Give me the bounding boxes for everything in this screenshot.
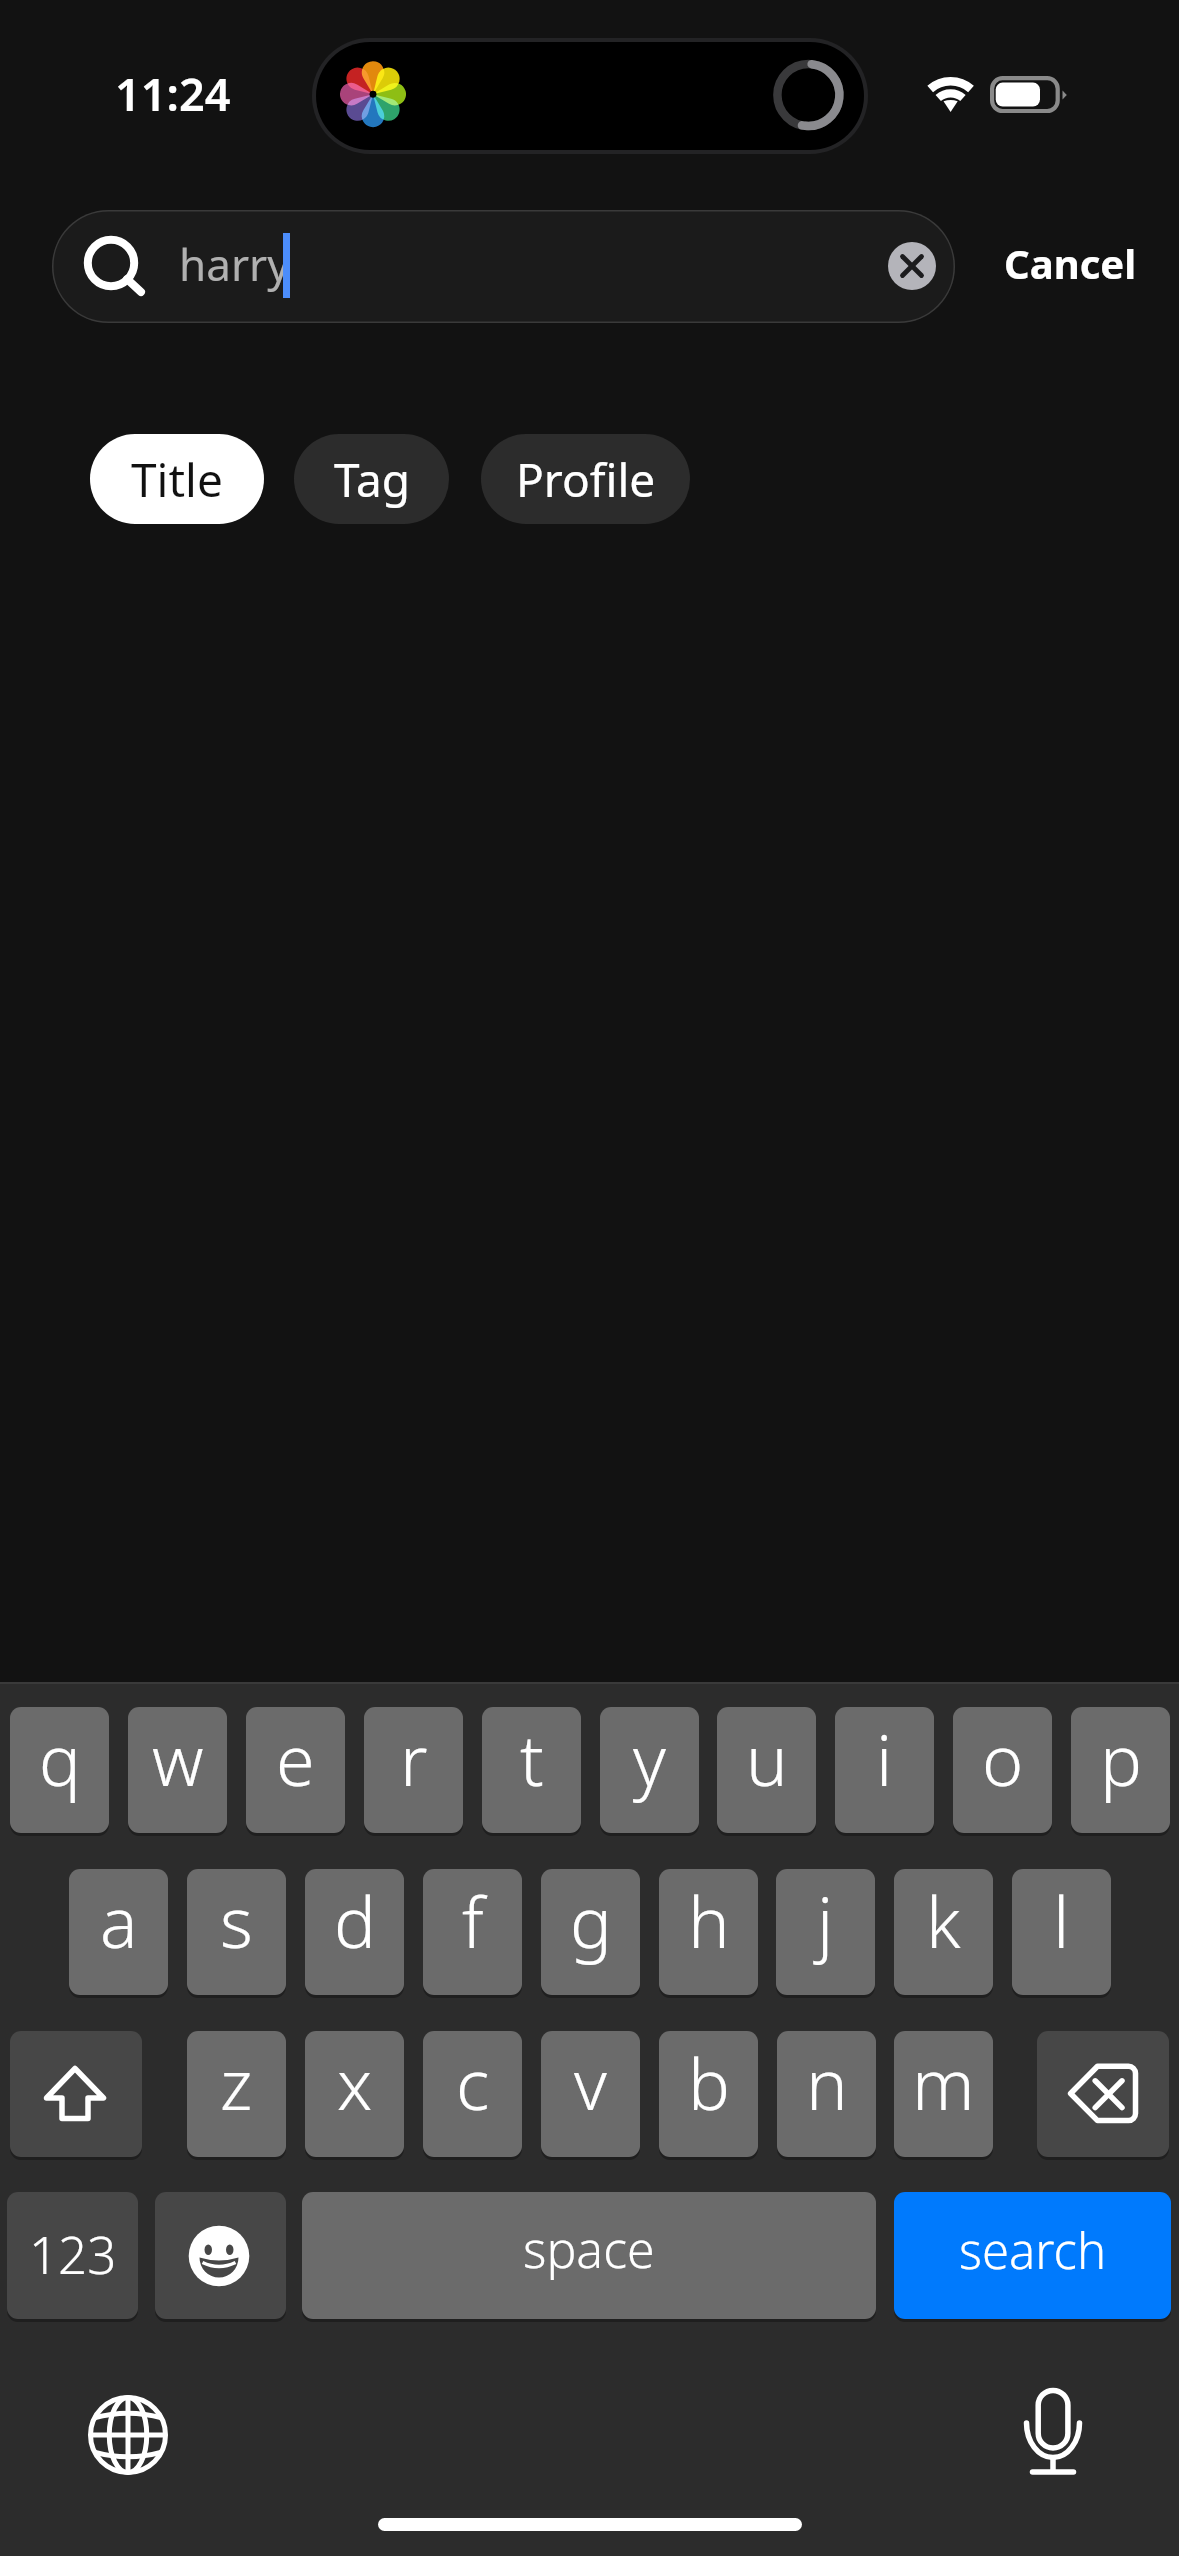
staticText: f	[462, 1873, 484, 1968]
staticText: Cancel	[1004, 236, 1137, 290]
button[interactable]: w	[128, 1707, 227, 1833]
button[interactable]: a	[69, 1869, 168, 1995]
staticText: e	[276, 1711, 315, 1806]
button[interactable]: Clear text	[888, 242, 936, 290]
staticText: h	[688, 1873, 730, 1968]
button[interactable]: l	[1012, 1869, 1111, 1995]
button[interactable]: c	[423, 2031, 522, 2157]
staticText: Tag	[334, 448, 410, 511]
button[interactable]: g	[541, 1869, 640, 1995]
staticText: r	[400, 1711, 428, 1806]
button[interactable]: m	[894, 2031, 993, 2157]
button[interactable]: Tag	[294, 434, 449, 524]
staticText: t	[520, 1711, 544, 1806]
staticText: w	[152, 1711, 204, 1806]
button[interactable]: r	[364, 1707, 463, 1833]
staticText: o	[982, 1711, 1024, 1806]
button[interactable]: f	[423, 1869, 522, 1995]
staticText: x	[337, 2035, 373, 2130]
staticText: n	[806, 2035, 848, 2130]
button[interactable]: z	[187, 2031, 286, 2157]
button[interactable]: Title	[90, 434, 264, 524]
button[interactable]: d	[305, 1869, 404, 1995]
button[interactable]: b	[659, 2031, 758, 2157]
button[interactable]: q	[10, 1707, 109, 1833]
staticText: p	[1100, 1711, 1142, 1806]
button[interactable]: t	[482, 1707, 581, 1833]
staticText: Profile	[516, 448, 656, 511]
staticText: 123	[29, 2219, 117, 2288]
button[interactable]: n	[777, 2031, 876, 2157]
staticText: u	[746, 1711, 788, 1806]
button[interactable]: u	[717, 1707, 816, 1833]
button[interactable]: p	[1071, 1707, 1170, 1833]
staticText: c	[456, 2035, 490, 2130]
button[interactable]: 123	[7, 2192, 138, 2319]
staticText: Title	[131, 448, 223, 511]
staticText: k	[926, 1873, 961, 1968]
button[interactable]: y	[600, 1707, 699, 1833]
staticText: g	[570, 1873, 612, 1968]
staticText: search	[959, 2217, 1107, 2284]
staticText: b	[688, 2035, 730, 2130]
button[interactable]: s	[187, 1869, 286, 1995]
button[interactable]: i	[835, 1707, 934, 1833]
button[interactable]: Cancel	[985, 206, 1155, 319]
staticText: s	[220, 1873, 253, 1968]
button[interactable]: Emoji	[155, 2192, 286, 2319]
staticText: i	[876, 1711, 893, 1806]
staticText: y	[633, 1711, 666, 1806]
button[interactable]: k	[894, 1869, 993, 1995]
staticText: l	[1053, 1873, 1070, 1968]
staticText: z	[220, 2035, 253, 2130]
button[interactable]: x	[305, 2031, 404, 2157]
button[interactable]: search	[894, 2192, 1171, 2319]
button[interactable]: Profile	[481, 434, 690, 524]
button[interactable]: h	[659, 1869, 758, 1995]
button[interactable]: j	[776, 1869, 875, 1995]
button[interactable]: Shift	[10, 2031, 142, 2157]
button[interactable]: Backspace	[1037, 2031, 1169, 2157]
button[interactable]: v	[541, 2031, 640, 2157]
button[interactable]: harry	[52, 210, 955, 323]
button[interactable]: o	[953, 1707, 1052, 1833]
staticText: v	[574, 2035, 607, 2130]
button[interactable]: Change keyboard language	[90, 2397, 166, 2473]
button[interactable]: space	[302, 2192, 876, 2319]
staticText: d	[334, 1873, 376, 1968]
staticText: q	[39, 1711, 81, 1806]
staticText: 11:24	[115, 63, 231, 124]
button[interactable]: Dictation	[1012, 2395, 1088, 2471]
staticText: a	[100, 1873, 138, 1968]
button[interactable]: e	[246, 1707, 345, 1833]
staticText: m	[912, 2035, 975, 2130]
staticText: space	[523, 2215, 655, 2283]
staticText: harry	[179, 234, 290, 294]
staticText: j	[817, 1873, 834, 1968]
